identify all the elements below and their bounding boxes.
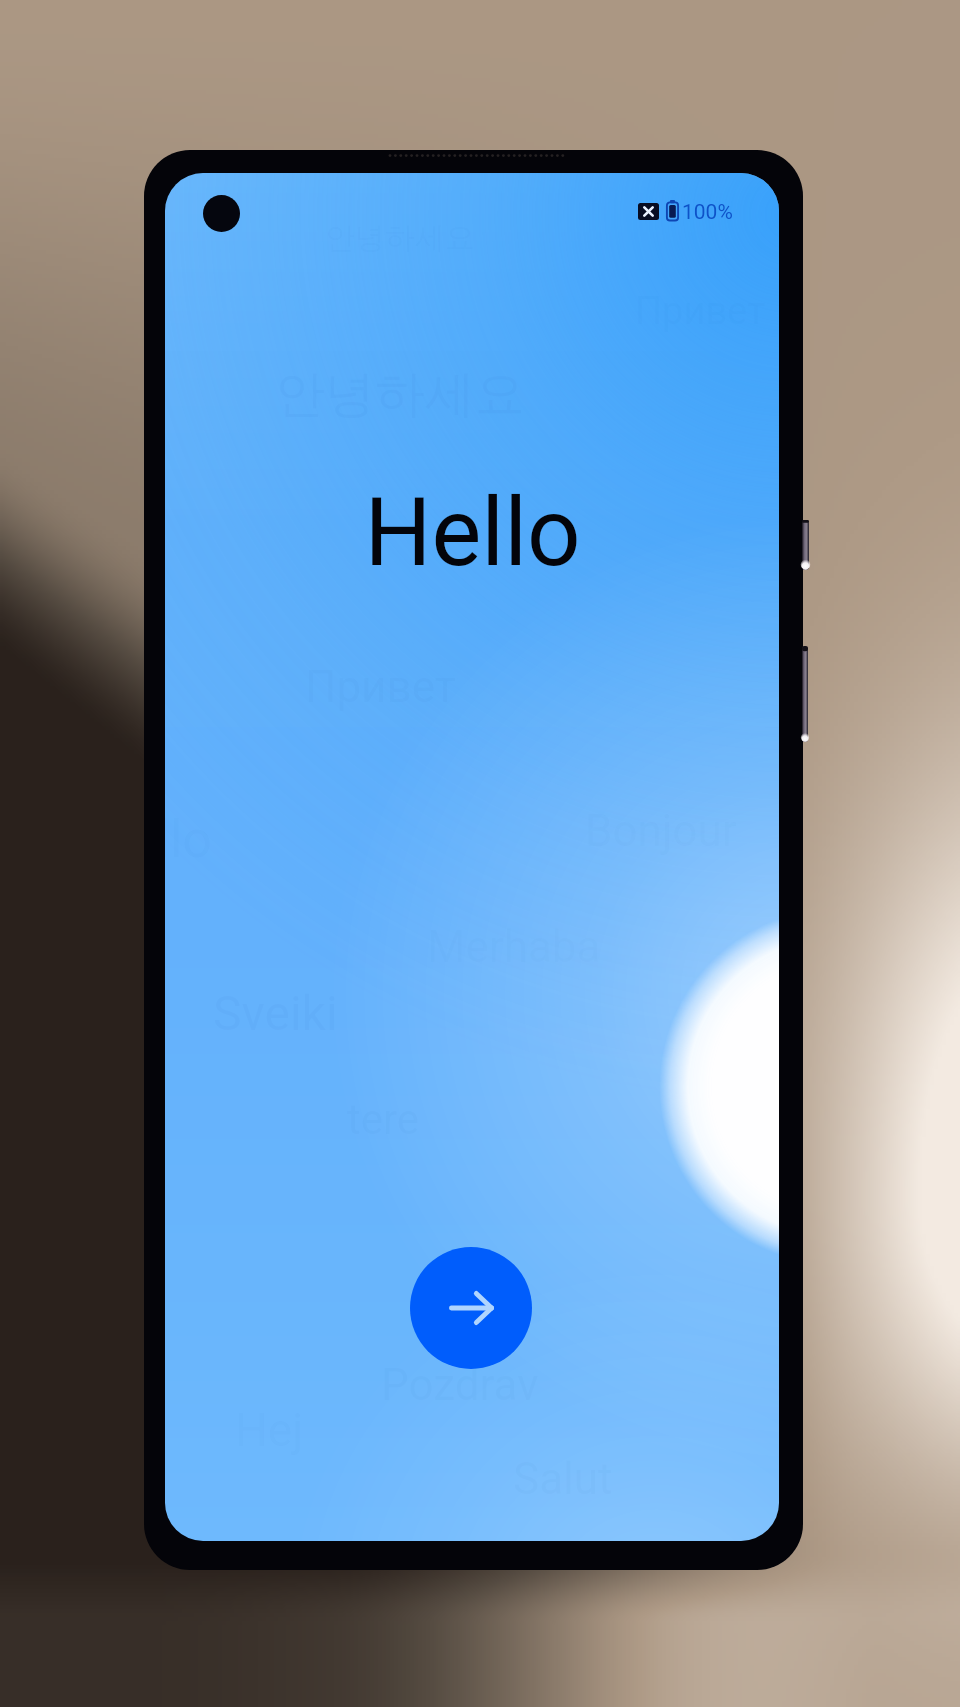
button[interactable]: Next: [410, 1247, 532, 1369]
staticText: 100%: [682, 200, 733, 225]
staticText: Merhaba: [427, 921, 601, 973]
staticText: Bonjour: [585, 805, 737, 857]
staticText: Pozdrav: [381, 1359, 539, 1411]
staticText: 안녕하세요: [275, 363, 525, 426]
staticText: Hello: [364, 478, 581, 588]
